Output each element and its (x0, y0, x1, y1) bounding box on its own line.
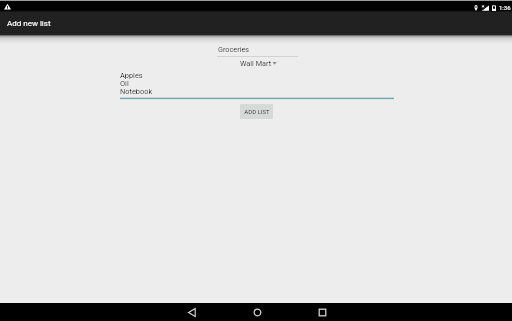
button[interactable]: Apples Oil Notebook (120, 69, 394, 100)
staticText: Add new list (7, 19, 51, 28)
staticText: Groceries (218, 45, 250, 54)
button[interactable]: ADD LIST (240, 104, 273, 119)
staticText: Wall Mart (240, 59, 272, 68)
button[interactable]: Wall Mart (240, 58, 277, 68)
staticText: ADD LIST (244, 108, 270, 115)
button[interactable]: Groceries (217, 44, 298, 58)
button[interactable]: Add new list (0, 12, 512, 35)
button[interactable]: Home (241, 303, 273, 321)
staticText: 1:36 (499, 4, 511, 11)
button[interactable]: Back (176, 303, 208, 321)
button[interactable]: Recent apps (306, 303, 338, 321)
staticText: Apples Oil Notebook (120, 71, 153, 96)
